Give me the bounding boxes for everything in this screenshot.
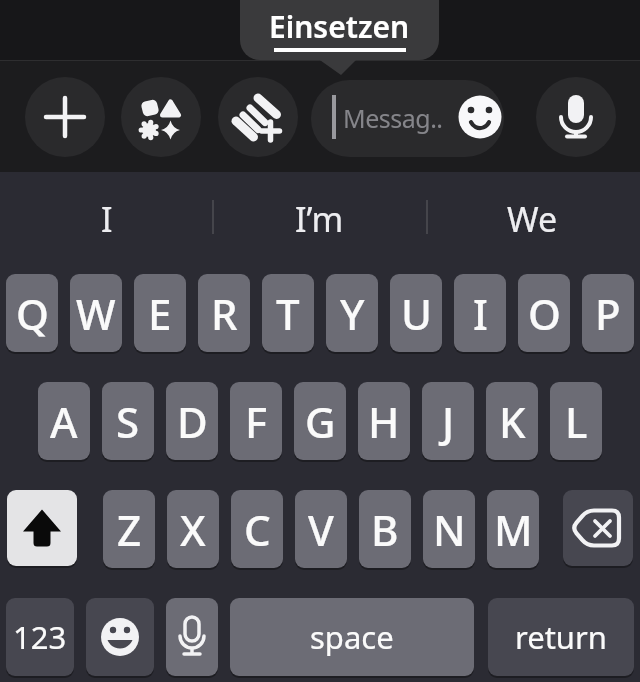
staticText: We — [507, 196, 558, 242]
staticText: return — [515, 616, 607, 658]
button[interactable]: U — [390, 274, 442, 352]
button[interactable]: V — [295, 490, 347, 568]
staticText: T — [276, 285, 300, 342]
staticText: U — [401, 285, 432, 342]
button[interactable]: Q — [6, 274, 58, 352]
staticText: J — [442, 393, 455, 450]
button[interactable]: T — [262, 274, 314, 352]
staticText: D — [177, 393, 208, 450]
staticText: M — [494, 501, 533, 558]
button[interactable]: 123 — [6, 598, 74, 676]
button[interactable] — [166, 598, 218, 676]
button[interactable]: W — [70, 274, 122, 352]
button[interactable]: K — [486, 382, 538, 460]
button[interactable]: H — [358, 382, 410, 460]
staticText: I’m — [295, 196, 344, 242]
button[interactable] — [218, 77, 298, 157]
staticText: B — [371, 501, 399, 558]
staticText: K — [499, 393, 526, 450]
staticText: V — [308, 501, 334, 558]
button[interactable]: D — [166, 382, 218, 460]
staticText: R — [211, 285, 238, 342]
button[interactable]: return — [488, 598, 634, 676]
button[interactable] — [536, 77, 616, 157]
button[interactable]: P — [582, 274, 634, 352]
button[interactable]: X — [167, 490, 219, 568]
button[interactable]: R — [198, 274, 250, 352]
button[interactable]: We — [466, 194, 599, 244]
staticText: F — [245, 393, 268, 450]
staticText: P — [595, 285, 621, 342]
button[interactable]: I’m — [253, 194, 386, 244]
button[interactable]: A — [38, 382, 90, 460]
button[interactable]: Z — [103, 490, 155, 568]
staticText: X — [180, 501, 206, 558]
button[interactable]: space — [230, 598, 474, 676]
button[interactable] — [7, 490, 77, 566]
staticText: W — [76, 285, 116, 342]
staticText: Einsetzen — [269, 6, 410, 47]
button[interactable]: N — [423, 490, 475, 568]
staticText: 123 — [13, 616, 67, 658]
button[interactable] — [563, 490, 633, 566]
button[interactable]: S — [102, 382, 154, 460]
staticText: G — [305, 393, 336, 450]
button[interactable] — [25, 77, 105, 157]
staticText: Z — [117, 501, 142, 558]
button[interactable]: E — [134, 274, 186, 352]
button[interactable]: C — [231, 490, 283, 568]
button[interactable]: Y — [326, 274, 378, 352]
button[interactable]: I — [454, 274, 506, 352]
staticText: Q — [16, 285, 49, 342]
button[interactable]: F — [230, 382, 282, 460]
button[interactable]: Messag.. — [311, 80, 504, 157]
staticText: N — [433, 501, 466, 558]
button[interactable] — [240, 0, 439, 60]
staticText: H — [368, 393, 400, 450]
staticText: S — [116, 393, 140, 450]
staticText: I — [473, 285, 488, 342]
staticText: O — [528, 285, 561, 342]
button[interactable]: O — [518, 274, 570, 352]
staticText: Messag.. — [343, 101, 443, 135]
staticText: E — [148, 285, 172, 342]
button[interactable]: L — [550, 382, 602, 460]
button[interactable]: G — [294, 382, 346, 460]
button[interactable]: I — [40, 194, 173, 244]
button[interactable]: B — [359, 490, 411, 568]
staticText: Y — [340, 285, 365, 342]
staticText: space — [310, 616, 394, 658]
staticText: C — [244, 501, 271, 558]
staticText: L — [565, 393, 588, 450]
staticText: I — [101, 196, 113, 242]
button[interactable] — [121, 77, 201, 157]
button[interactable]: J — [422, 382, 474, 460]
button[interactable] — [86, 598, 154, 676]
button[interactable]: M — [487, 490, 539, 568]
staticText: A — [50, 393, 78, 450]
